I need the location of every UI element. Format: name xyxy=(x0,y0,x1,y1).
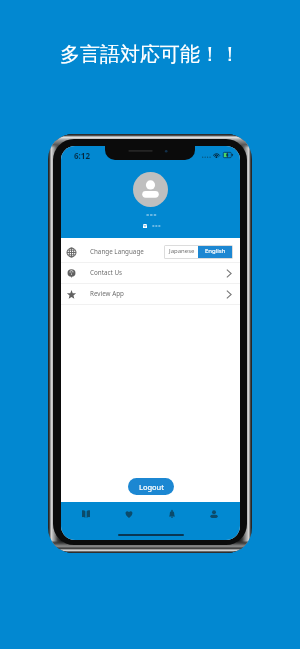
staticText: Japanese xyxy=(169,247,195,255)
staticText: Contact Us xyxy=(90,268,123,277)
button[interactable]: Profile xyxy=(193,502,234,526)
staticText: Logout xyxy=(139,482,164,492)
button[interactable]: Notifications xyxy=(150,502,193,526)
button[interactable]: English xyxy=(198,246,232,258)
staticText: Change Language xyxy=(90,247,144,256)
button[interactable]: Library xyxy=(64,502,107,526)
button[interactable]: Change Language xyxy=(61,242,240,262)
staticText: 多言語対応可能！！ xyxy=(60,42,240,67)
button[interactable]: Favorites xyxy=(107,502,150,526)
button[interactable]: Logout xyxy=(128,478,174,495)
button[interactable]: Contact Us xyxy=(61,263,240,283)
button[interactable]: Japanese xyxy=(165,246,198,258)
staticText: Review App xyxy=(90,289,124,298)
staticText: 6:12 xyxy=(74,150,90,161)
staticText: English xyxy=(205,247,226,255)
button[interactable]: Review App xyxy=(61,284,240,304)
